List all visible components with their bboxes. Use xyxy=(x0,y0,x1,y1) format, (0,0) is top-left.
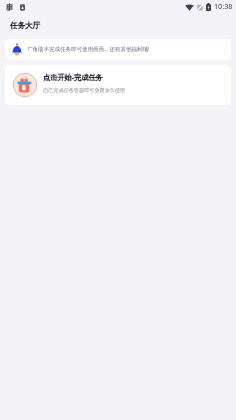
staticText: 点击开始-完成任务 xyxy=(43,72,103,82)
staticText: 10:38 xyxy=(214,1,233,11)
staticText: 广角助手完成任务即可使用画画，还有其他福利哦! xyxy=(27,45,150,53)
button[interactable]: 点击开始-完成任务 xyxy=(5,65,231,105)
button[interactable]: 广角助手完成任务即可使用画画，还有其他福利哦! xyxy=(5,39,231,60)
staticText: 任务大厅 xyxy=(10,21,40,30)
staticText: 自己完成任务答题即可免费永久使用 xyxy=(43,87,126,93)
